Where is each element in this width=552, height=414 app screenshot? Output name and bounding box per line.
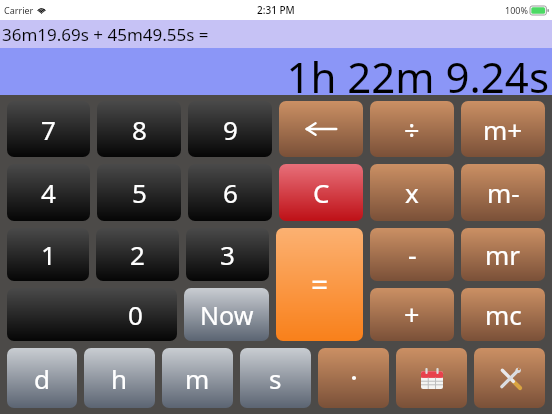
button[interactable]: m	[162, 348, 233, 408]
staticText: m	[185, 361, 210, 396]
staticText: 36m19.69s + 45m49.55s =	[2, 23, 209, 46]
staticText: +	[404, 296, 420, 333]
staticText: C	[313, 175, 330, 210]
button[interactable]: 8	[97, 101, 181, 157]
staticText: 6	[223, 175, 238, 210]
staticText: m+	[483, 112, 523, 147]
button[interactable]: Backspace	[279, 101, 363, 157]
staticText: d	[34, 361, 50, 396]
staticText: Carrier	[4, 4, 34, 16]
staticText: 7	[41, 112, 56, 147]
staticText: x	[405, 175, 419, 210]
button[interactable]: -	[370, 228, 454, 281]
button[interactable]: 1	[7, 228, 89, 281]
button[interactable]: ÷	[370, 101, 454, 157]
button[interactable]: 0	[7, 288, 177, 341]
staticText: h	[111, 361, 128, 396]
button[interactable]: +	[370, 288, 454, 341]
staticText: Now	[200, 298, 254, 332]
staticText: -	[408, 236, 417, 273]
button[interactable]: d	[7, 348, 77, 408]
button[interactable]: C	[279, 164, 363, 221]
button[interactable]: 2	[96, 228, 179, 281]
staticText: 3	[220, 237, 235, 272]
staticText: 2	[130, 237, 145, 272]
button[interactable]: m-	[461, 164, 545, 221]
staticText: 1h 22m 9.24s	[286, 48, 549, 95]
button[interactable]: 4	[7, 164, 90, 221]
staticText: 4	[41, 175, 56, 210]
staticText: m-	[487, 175, 520, 210]
button[interactable]: 6	[188, 164, 272, 221]
button[interactable]: s	[240, 348, 311, 408]
button[interactable]: Decimal point	[318, 348, 389, 408]
button[interactable]: 5	[97, 164, 181, 221]
staticText: =	[311, 264, 329, 305]
button[interactable]: mr	[461, 228, 545, 281]
button[interactable]: Settings	[474, 348, 545, 408]
button[interactable]: 7	[7, 101, 90, 157]
button[interactable]: m+	[461, 101, 545, 157]
staticText: 1	[41, 237, 56, 272]
staticText: 8	[132, 112, 147, 147]
button[interactable]: h	[84, 348, 155, 408]
staticText: 0	[128, 297, 143, 332]
staticText: mr	[485, 237, 521, 272]
staticText: 100%	[505, 4, 528, 16]
staticText: s	[269, 361, 282, 396]
staticText: 5	[132, 175, 147, 210]
button[interactable]: 9	[188, 101, 272, 157]
button[interactable]: =	[276, 228, 363, 341]
staticText: ÷	[404, 111, 420, 148]
button[interactable]: Now	[184, 288, 269, 341]
staticText: 9	[223, 112, 238, 147]
staticText: 2:31 PM	[257, 3, 295, 17]
staticText: mc	[485, 297, 522, 332]
button[interactable]: x	[370, 164, 454, 221]
button[interactable]: mc	[461, 288, 545, 341]
button[interactable]: 3	[186, 228, 269, 281]
button[interactable]: Date picker	[396, 348, 467, 408]
